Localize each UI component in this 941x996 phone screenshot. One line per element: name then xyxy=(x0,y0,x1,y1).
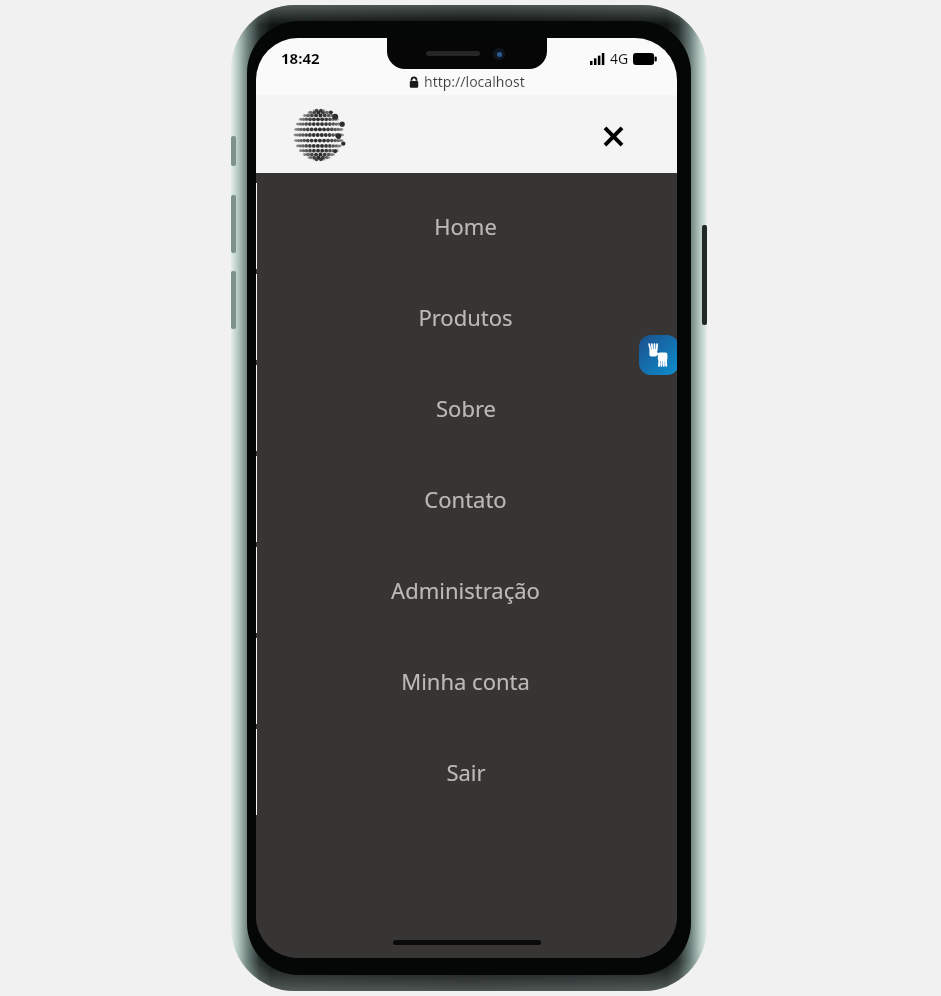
button[interactable]: Fechar menu xyxy=(592,115,634,157)
staticText: 4G xyxy=(610,49,629,68)
staticText: Sobre xyxy=(436,393,496,423)
staticText: Sair xyxy=(446,757,486,787)
staticText: Minha conta xyxy=(401,666,530,696)
button[interactable]: Contato xyxy=(256,453,677,544)
button[interactable]: Minha conta xyxy=(256,635,677,726)
button[interactable]: VLibras acessibilidade xyxy=(639,335,677,375)
staticText: Administração xyxy=(391,575,540,605)
button[interactable]: Logo xyxy=(292,108,346,162)
button[interactable]: Produtos xyxy=(256,271,677,362)
staticText: Contato xyxy=(424,484,507,514)
button[interactable]: Administração xyxy=(256,544,677,635)
button[interactable]: Sair xyxy=(256,726,677,817)
button[interactable]: Sobre xyxy=(256,362,677,453)
staticText: Home xyxy=(434,211,497,241)
staticText: Produtos xyxy=(418,302,513,332)
staticText: 18:42 xyxy=(281,48,320,68)
staticText: http://localhost xyxy=(424,72,525,91)
button[interactable]: Home xyxy=(256,180,677,271)
